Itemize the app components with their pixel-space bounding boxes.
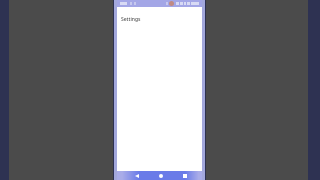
staticText: Settings [121, 16, 141, 23]
button[interactable]: Settings [117, 7, 202, 23]
button[interactable]: Recent apps [179, 171, 191, 180]
button[interactable]: Back [131, 171, 143, 180]
button[interactable]: Home [155, 171, 167, 180]
